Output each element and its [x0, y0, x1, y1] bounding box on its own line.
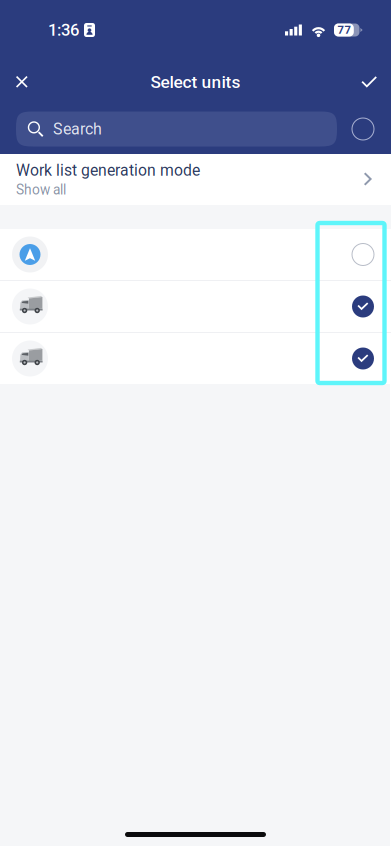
- staticText: Search: [53, 120, 102, 138]
- button[interactable]: Done: [345, 60, 391, 104]
- button[interactable]: Work list generation mode: [0, 154, 391, 205]
- button[interactable]: Selected: [341, 284, 385, 328]
- staticText: 77: [337, 23, 351, 37]
- staticText: Select units: [150, 72, 240, 92]
- button[interactable]: Select all: [345, 111, 381, 147]
- button[interactable]: Search: [16, 111, 337, 146]
- staticText: Work list generation mode: [16, 161, 200, 180]
- staticText: Show all: [16, 182, 66, 198]
- staticText: 1:36: [48, 20, 79, 40]
- button[interactable]: Selected: [341, 336, 385, 380]
- button[interactable]: Not selected: [341, 232, 385, 276]
- button[interactable]: Close: [0, 60, 44, 104]
